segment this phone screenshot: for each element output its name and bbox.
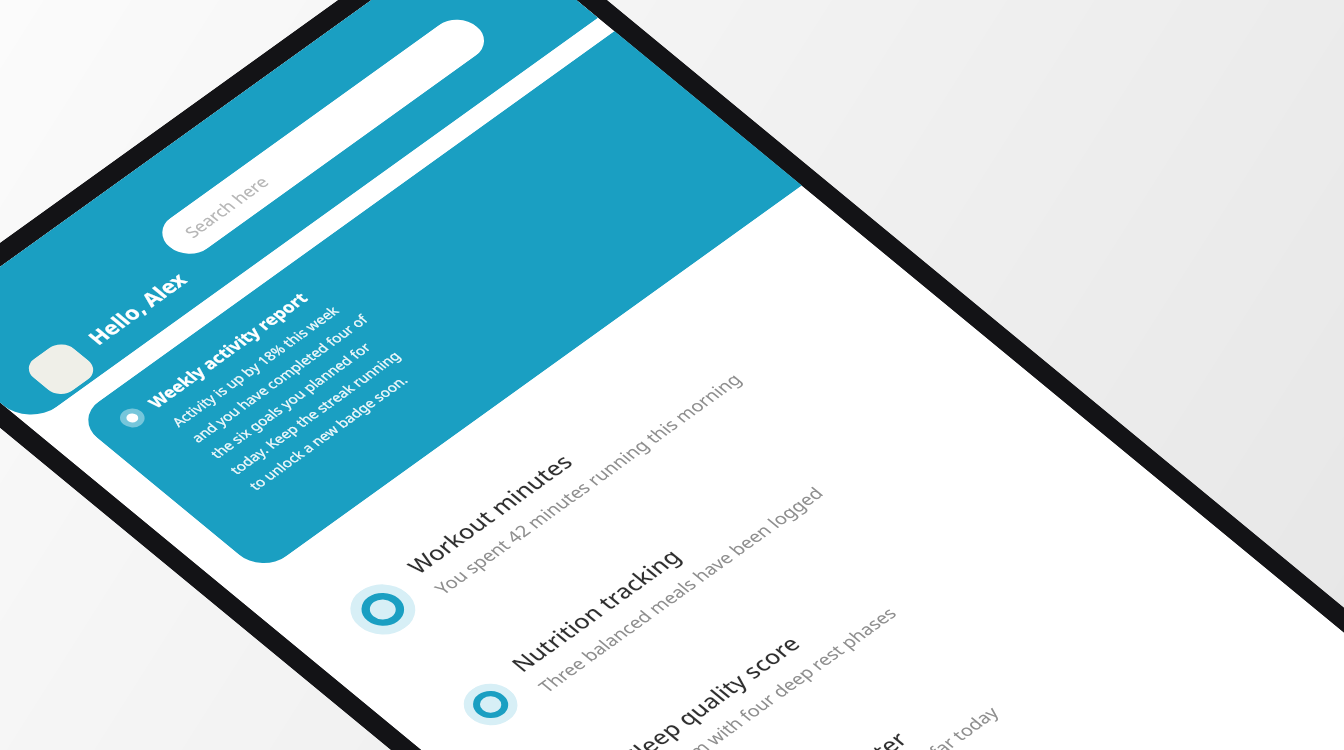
button[interactable]: Workout minutes bbox=[300, 200, 924, 688]
staticText: Hello, Alex bbox=[81, 264, 194, 353]
staticText: You spent 42 minutes running this mornin… bbox=[428, 358, 748, 609]
staticText: Workout minutes bbox=[399, 442, 580, 584]
button[interactable]: Daily step counter bbox=[636, 477, 1259, 750]
staticText: Nutrition tracking bbox=[503, 537, 688, 682]
staticText: Daily step counter bbox=[726, 720, 914, 750]
staticText: 8,420 steps recorded so far today bbox=[756, 694, 1005, 750]
button[interactable]: Profile bbox=[20, 337, 102, 401]
staticText: Weekly activity report bbox=[142, 283, 313, 417]
button[interactable]: Mindfulness session bbox=[747, 569, 1344, 750]
button[interactable]: Search here bbox=[150, 1, 496, 272]
staticText: Search here bbox=[179, 169, 274, 244]
staticText: 7h 20m with four deep rest phases bbox=[644, 594, 903, 750]
button[interactable] bbox=[69, 14, 807, 591]
staticText: Three balanced meals have been logged bbox=[532, 473, 830, 706]
staticText: Activity is up by 18% this week and you … bbox=[165, 289, 433, 499]
staticText: Sleep quality score bbox=[614, 624, 807, 750]
button[interactable]: Sleep quality score bbox=[524, 384, 1147, 750]
button[interactable]: Nutrition tracking bbox=[412, 292, 1036, 750]
